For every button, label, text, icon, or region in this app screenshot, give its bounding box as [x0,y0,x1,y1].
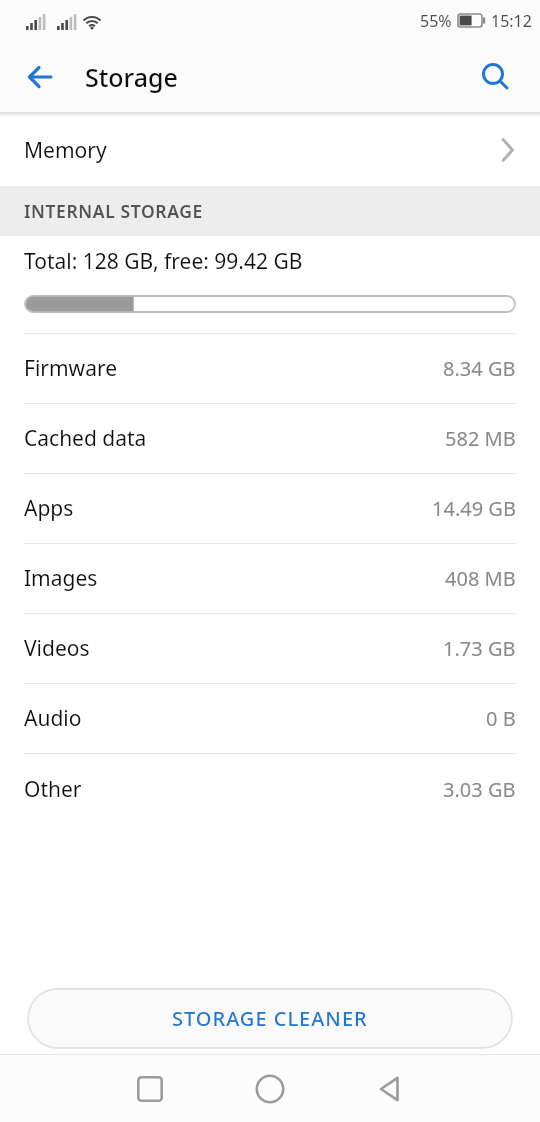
staticText: Total: 128 GB, free: 99.42 GB [24,247,303,276]
staticText: 0 B [486,705,516,732]
staticText: Memory [24,136,107,165]
staticText: Videos [24,634,90,663]
button[interactable] [378,1076,404,1102]
staticText: Images [24,564,98,593]
staticText: Audio [24,704,82,733]
staticText: Apps [24,494,74,523]
button[interactable] [18,55,62,99]
staticText: INTERNAL STORAGE [24,199,203,223]
staticText: Other [24,775,82,804]
staticText: 3.03 GB [443,776,516,803]
staticText: 8.34 GB [443,355,516,382]
button[interactable]: Apps [0,474,540,543]
staticText: 582 MB [445,425,516,452]
staticText: 15:12 [491,10,532,32]
button[interactable]: Memory [0,114,540,186]
button[interactable]: Images [0,544,540,613]
staticText: 55% [420,10,452,32]
button[interactable]: Cached data [0,404,540,473]
button[interactable]: Audio [0,684,540,753]
staticText: 14.49 GB [432,495,516,522]
staticText: Storage [85,60,178,94]
staticText: Firmware [24,354,118,383]
staticText: Cached data [24,424,147,453]
button[interactable] [137,1076,163,1102]
staticText: 408 MB [445,565,516,592]
button[interactable]: Firmware [0,334,540,403]
button[interactable] [474,55,518,99]
staticText: STORAGE CLEANER [172,1005,368,1032]
button[interactable] [256,1075,284,1103]
button[interactable]: Videos [0,614,540,683]
button[interactable]: Other [0,754,540,824]
button[interactable]: STORAGE CLEANER [27,988,513,1049]
staticText: 1.73 GB [443,635,516,662]
